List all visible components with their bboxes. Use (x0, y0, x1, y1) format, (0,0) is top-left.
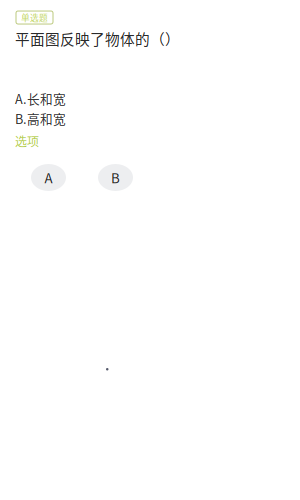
staticText: 单选题 (21, 11, 48, 24)
button[interactable]: 选项 B (98, 164, 133, 191)
staticText: B (111, 168, 120, 187)
staticText: B.高和宽 (15, 109, 66, 128)
staticText: 选项 (15, 132, 39, 150)
staticText: 平面图反映了物体的（） (15, 28, 180, 49)
staticText: A.长和宽 (15, 89, 66, 108)
staticText: A (44, 168, 52, 187)
button[interactable]: 选项 A (31, 164, 66, 191)
